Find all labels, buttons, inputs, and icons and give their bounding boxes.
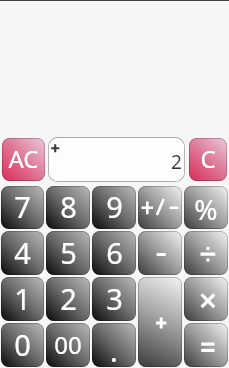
staticText: 8: [60, 187, 77, 226]
button[interactable]: 4: [1, 231, 44, 275]
button[interactable]: 9: [92, 186, 136, 229]
button[interactable]: 5: [46, 231, 90, 275]
button[interactable]: 6: [92, 231, 136, 275]
button[interactable]: Plus: [138, 277, 182, 367]
button[interactable]: C: [189, 138, 227, 181]
staticText: 1: [14, 279, 31, 318]
staticText: 7: [14, 187, 31, 226]
staticText: .: [110, 331, 118, 367]
button[interactable]: 8: [46, 186, 90, 229]
staticText: 0: [14, 325, 31, 364]
button[interactable]: 2: [46, 277, 90, 321]
staticText: AC: [8, 142, 39, 175]
staticText: 3: [106, 279, 123, 318]
button[interactable]: AC: [2, 138, 45, 181]
button[interactable]: Equals: [184, 323, 228, 367]
staticText: C: [200, 142, 216, 175]
button[interactable]: 7: [1, 186, 44, 229]
button[interactable]: Minus: [138, 231, 182, 275]
button[interactable]: .: [92, 323, 136, 367]
button[interactable]: 0: [1, 323, 44, 367]
button[interactable]: Divide: [184, 231, 228, 275]
button[interactable]: Plus minus: [138, 186, 182, 229]
staticText: 5: [60, 233, 77, 272]
button[interactable]: 2: [48, 137, 185, 182]
button[interactable]: 1: [1, 277, 44, 321]
staticText: 00: [54, 328, 82, 361]
staticText: 9: [106, 187, 123, 226]
staticText: 2: [60, 279, 77, 318]
staticText: 2: [171, 149, 182, 175]
staticText: %: [194, 190, 218, 228]
button[interactable]: 00: [46, 323, 90, 367]
button[interactable]: 3: [92, 277, 136, 321]
staticText: 4: [14, 233, 31, 272]
button[interactable]: %: [184, 186, 228, 229]
staticText: 6: [106, 233, 123, 272]
button[interactable]: Multiply: [184, 277, 228, 321]
